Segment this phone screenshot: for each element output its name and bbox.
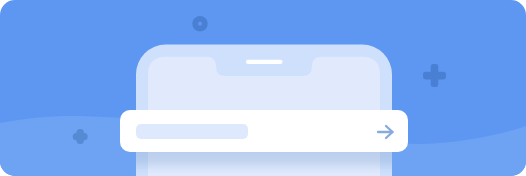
button[interactable]: Search	[360, 110, 408, 152]
button[interactable]: Search	[120, 110, 408, 152]
